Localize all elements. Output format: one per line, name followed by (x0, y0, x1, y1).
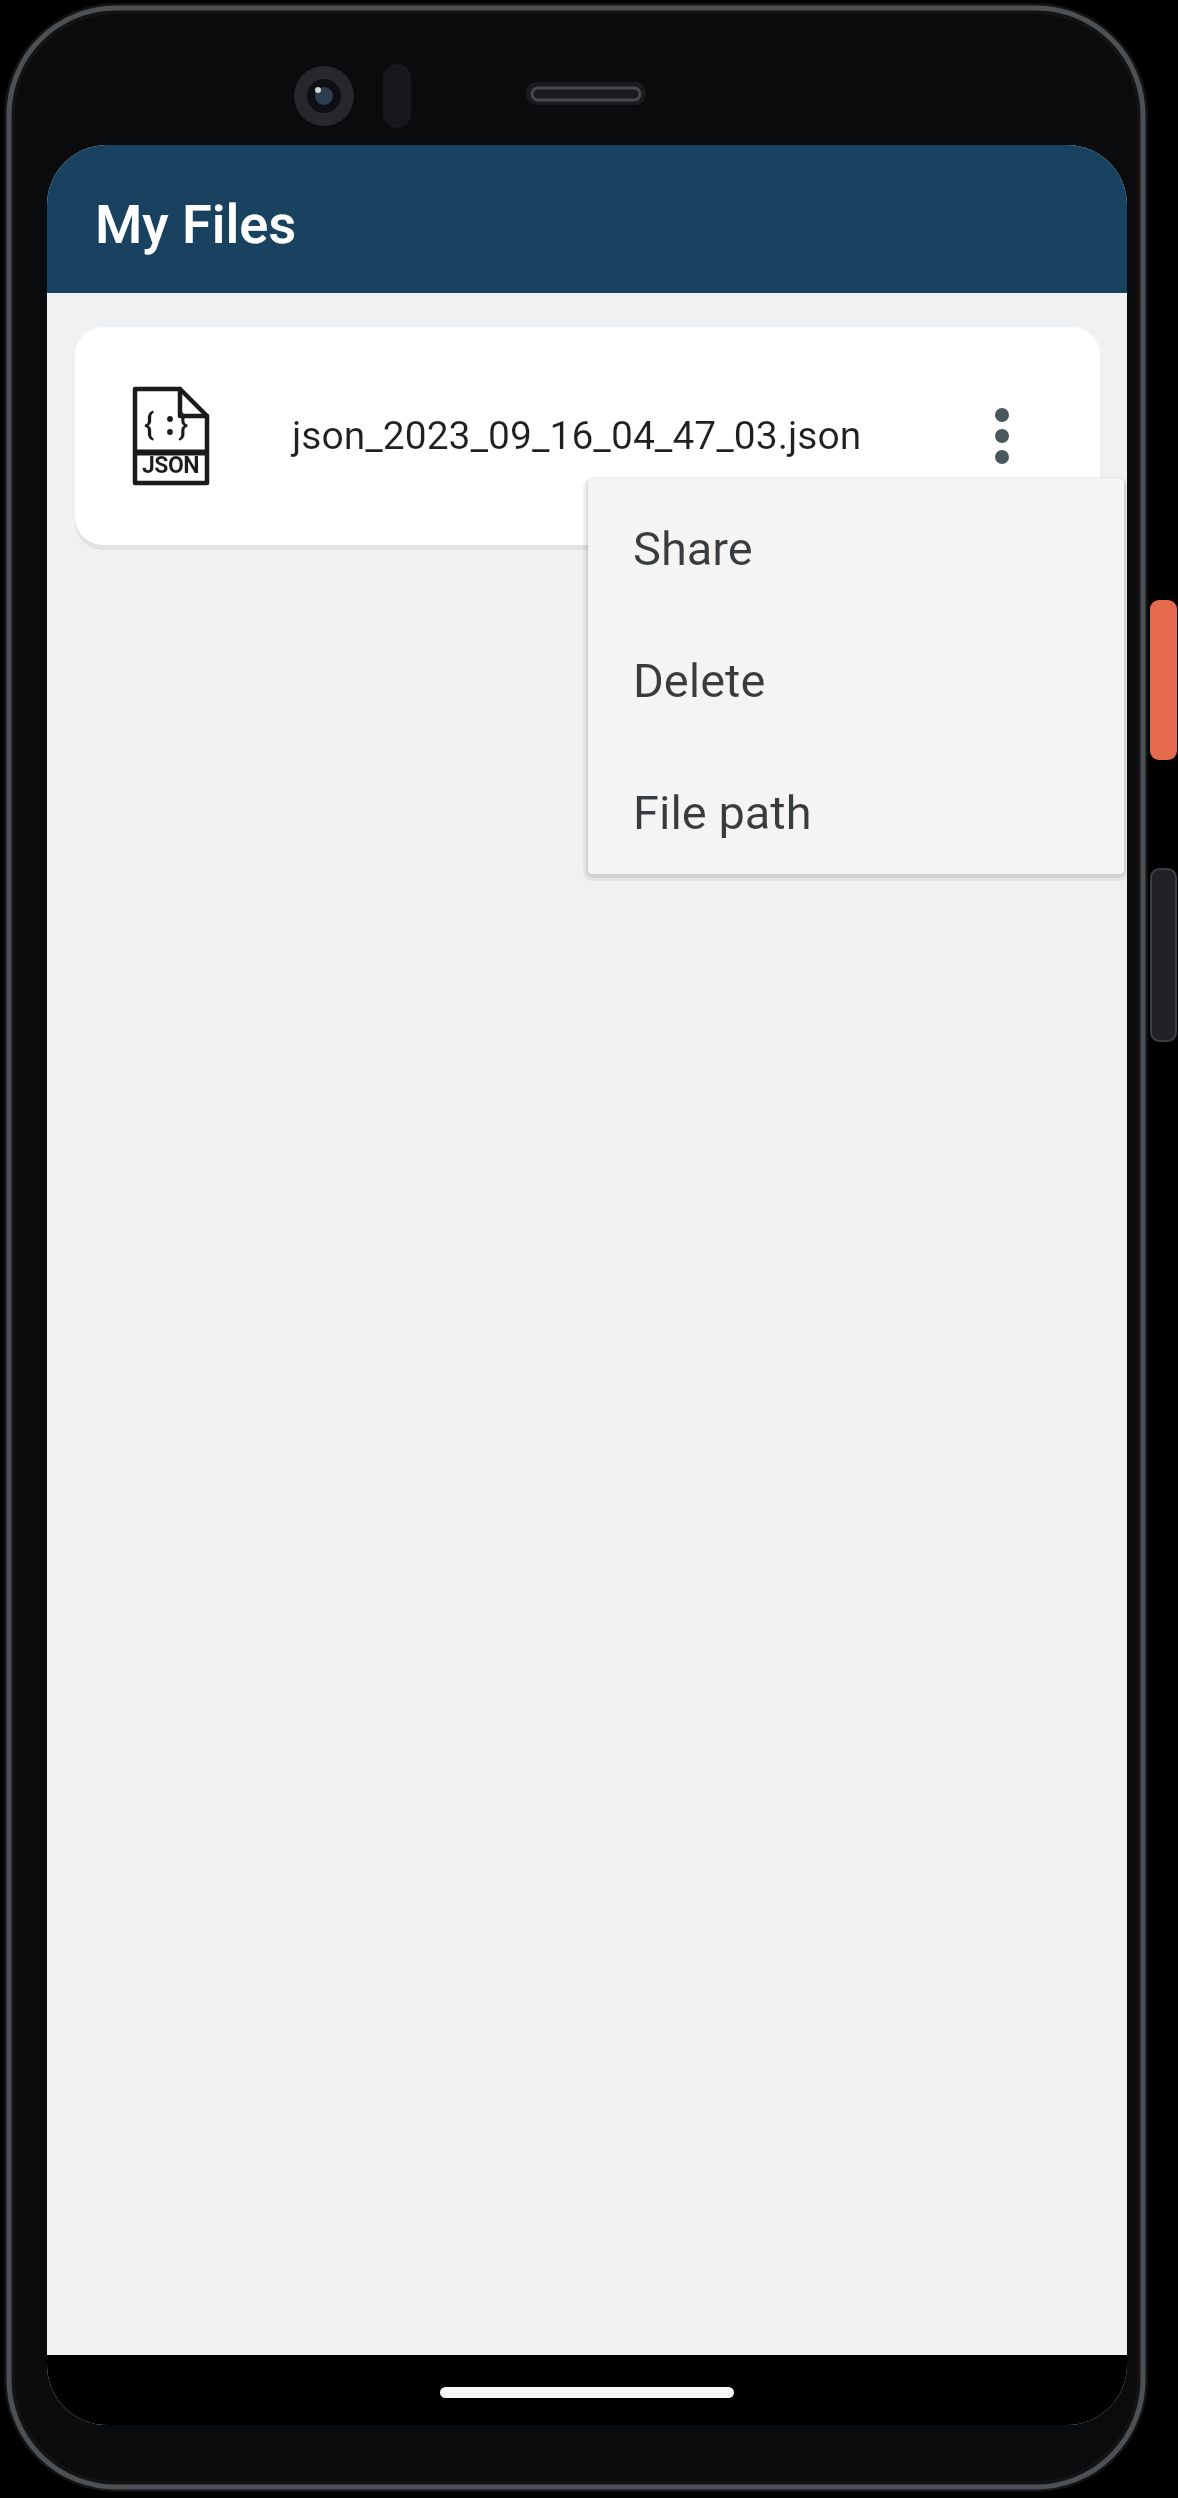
staticText: { (144, 406, 155, 442)
button[interactable]: Share (588, 478, 1124, 610)
staticText: Delete (633, 653, 766, 708)
staticText: } (178, 406, 189, 442)
staticText: JSON (142, 452, 200, 479)
staticText: json_2023_09_16_04_47_03.json (292, 413, 862, 459)
button[interactable]: File path (588, 742, 1124, 874)
button[interactable]: Delete (588, 610, 1124, 742)
button[interactable] (995, 408, 1009, 464)
staticText: File path (633, 785, 812, 840)
staticText: My Files (95, 193, 297, 256)
staticText: Share (633, 521, 753, 576)
button[interactable]: { (75, 327, 1100, 545)
